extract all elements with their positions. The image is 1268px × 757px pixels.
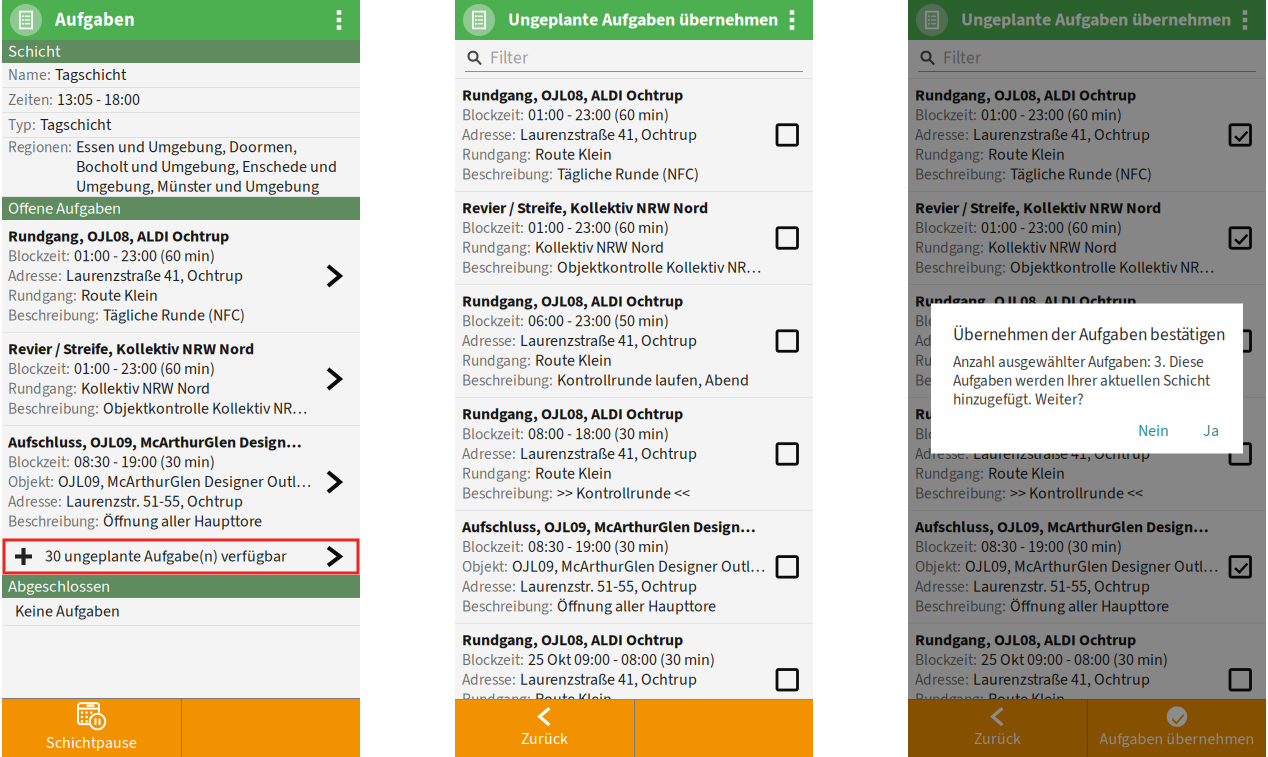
button[interactable]: Ja bbox=[1185, 413, 1243, 449]
staticText: Blockzeit: bbox=[915, 423, 977, 445]
staticText: Blockzeit: bbox=[8, 245, 70, 267]
staticText: Laurenzstr. 51-55, Ochtrup bbox=[66, 490, 243, 513]
staticText: 08:30 - 19:00 (30 min) bbox=[528, 536, 669, 558]
staticText: 01:00 - 23:00 (60 min) bbox=[74, 245, 215, 268]
staticText: Rundgang: bbox=[8, 378, 77, 400]
staticText: Tägliche Runde (NFC) bbox=[557, 163, 699, 186]
staticText: Rundgang, OJL08, ALDI Ochtrup bbox=[915, 629, 1136, 652]
staticText: Schicht bbox=[8, 40, 61, 63]
staticText: Rundgang, OJL08, ALDI Ochtrup bbox=[462, 84, 683, 107]
staticText: Ungeplante Aufgaben übernehmen bbox=[508, 7, 778, 33]
staticText: Zeiten: bbox=[8, 89, 53, 111]
button[interactable]: Revier / Streife, Kollektiv NRW Nord bbox=[2, 333, 360, 425]
staticText: Kollektiv NRW Nord bbox=[535, 236, 664, 259]
staticText: Route Klein bbox=[535, 462, 612, 485]
button[interactable]: Schichtpause bbox=[2, 699, 181, 757]
staticText: Adresse: bbox=[462, 443, 516, 465]
button[interactable]: Rundgang, OJL08, ALDI Ochtrup bbox=[908, 79, 1266, 191]
staticText: 01:00 - 23:00 (60 min) bbox=[981, 104, 1122, 127]
button[interactable]: Nein bbox=[1122, 413, 1185, 449]
staticText: Beschreibung: bbox=[462, 370, 553, 392]
staticText: Rundgang: bbox=[462, 350, 531, 372]
staticText: Abgeschlossen bbox=[8, 575, 110, 598]
button[interactable]: 30 ungeplante Aufgabe(n) verfügbar bbox=[2, 538, 360, 575]
staticText: Beschreibung: bbox=[8, 511, 99, 533]
button[interactable]: Mehr Optionen bbox=[1239, 0, 1251, 40]
staticText: Adresse: bbox=[915, 124, 969, 146]
staticText: Adresse: bbox=[462, 669, 516, 691]
staticText: Objektkontrolle Kollektiv NR… bbox=[103, 397, 307, 420]
button[interactable]: Rundgang, OJL08, ALDI Ochtrup bbox=[455, 624, 813, 736]
staticText: Adresse: bbox=[8, 491, 62, 513]
staticText: Rundgang, OJL08, ALDI Ochtrup bbox=[915, 403, 1136, 426]
staticText: 08:30 - 19:00 (30 min) bbox=[74, 451, 215, 474]
staticText: Schichtpause bbox=[46, 732, 137, 754]
staticText: Objektkontrolle Kollektiv NR… bbox=[1010, 256, 1214, 279]
staticText: Laurenzstraße 41, Ochtrup bbox=[973, 330, 1150, 352]
button[interactable]: Rundgang, OJL08, ALDI Ochtrup bbox=[2, 220, 360, 332]
staticText: Route Klein bbox=[988, 688, 1065, 711]
staticText: Blockzeit: bbox=[462, 104, 524, 126]
staticText: Laurenzstraße 41, Ochtrup bbox=[66, 265, 243, 287]
staticText: Rundgang: bbox=[915, 689, 984, 711]
staticText: Tägliche Runde (NFC) bbox=[103, 304, 245, 327]
staticText: Regionen: bbox=[8, 136, 72, 158]
button[interactable]: Rundgang, OJL08, ALDI Ochtrup bbox=[455, 79, 813, 191]
staticText: Blockzeit: bbox=[462, 217, 524, 239]
staticText: Route Klein bbox=[988, 349, 1065, 372]
staticText: Revier / Streife, Kollektiv NRW Nord bbox=[462, 197, 708, 220]
staticText: Adresse: bbox=[915, 669, 969, 691]
button[interactable]: Rundgang, OJL08, ALDI Ochtrup bbox=[908, 285, 1266, 397]
staticText: Blockzeit: bbox=[462, 310, 524, 332]
staticText: Laurenzstr. 51-55, Ochtrup bbox=[973, 575, 1150, 598]
staticText: Beschreibung: bbox=[8, 398, 99, 420]
staticText: Objekt: bbox=[462, 556, 508, 578]
button[interactable]: Rundgang, OJL08, ALDI Ochtrup bbox=[908, 398, 1266, 510]
staticText: Öffnung aller Haupttore bbox=[103, 510, 262, 533]
staticText: Rundgang: bbox=[915, 237, 984, 259]
button[interactable]: Mehr Optionen bbox=[333, 0, 345, 40]
button[interactable]: Aufschluss, OJL09, McArthurGlen Design… bbox=[2, 426, 360, 538]
button[interactable]: Zurück bbox=[908, 699, 1087, 757]
staticText: 01:00 - 23:00 (60 min) bbox=[981, 217, 1122, 239]
staticText: 08:30 - 19:00 (30 min) bbox=[981, 536, 1122, 558]
staticText: 25 Okt 09:00 - 08:00 (30 min) bbox=[528, 649, 715, 671]
staticText: Laurenzstraße 41, Ochtrup bbox=[520, 330, 697, 352]
staticText: OJL09, McArthurGlen Designer Outl… bbox=[512, 555, 765, 578]
button[interactable]: Rundgang, OJL08, ALDI Ochtrup bbox=[455, 398, 813, 510]
staticText: 06:00 - 23:00 (50 min) bbox=[528, 310, 669, 333]
button[interactable]: Rundgang, OJL08, ALDI Ochtrup bbox=[455, 285, 813, 397]
staticText: Rundgang: bbox=[8, 285, 77, 307]
staticText: Rundgang: bbox=[915, 463, 984, 485]
staticText: Blockzeit: bbox=[462, 536, 524, 558]
staticText: Blockzeit: bbox=[8, 358, 70, 380]
staticText: Blockzeit: bbox=[915, 217, 977, 239]
button[interactable]: Aufgaben übernehmen bbox=[1088, 699, 1266, 757]
staticText: Rundgang: bbox=[462, 689, 531, 711]
staticText: Beschreibung: bbox=[462, 257, 553, 279]
staticText: Rundgang: bbox=[462, 463, 531, 485]
button[interactable]: Zurück bbox=[455, 699, 634, 757]
staticText: Adresse: bbox=[462, 576, 516, 598]
staticText: Blockzeit: bbox=[915, 536, 977, 558]
button[interactable]: Revier / Streife, Kollektiv NRW Nord bbox=[908, 192, 1266, 284]
button[interactable]: Mehr Optionen bbox=[786, 0, 798, 40]
button[interactable]: Rundgang, OJL08, ALDI Ochtrup bbox=[908, 624, 1266, 736]
button[interactable]: Revier / Streife, Kollektiv NRW Nord bbox=[455, 192, 813, 284]
staticText: Beschreibung: bbox=[915, 709, 1006, 730]
staticText: Öffnung aller Haupttore bbox=[1010, 595, 1169, 618]
staticText: Ungeplante Aufgaben übernehmen bbox=[961, 7, 1231, 33]
button[interactable]: Aufschluss, OJL09, McArthurGlen Design… bbox=[908, 511, 1266, 623]
staticText: 25 Okt 09:00 - 08:00 (30 min) bbox=[981, 649, 1168, 671]
staticText: Bocholt und Umgebung, Enschede und bbox=[76, 156, 337, 178]
staticText: Revier / Streife, Kollektiv NRW Nord bbox=[915, 197, 1161, 220]
staticText: OJL09, McArthurGlen Designer Outl… bbox=[58, 471, 311, 493]
staticText: Rundgang, OJL08, ALDI Ochtrup bbox=[462, 403, 683, 426]
button[interactable]: Aufschluss, OJL09, McArthurGlen Design… bbox=[455, 511, 813, 623]
staticText: Aufgaben werden Ihrer aktuellen Schicht bbox=[953, 370, 1210, 392]
staticText: Adresse: bbox=[462, 124, 516, 146]
staticText: Rundgang: bbox=[915, 350, 984, 372]
staticText: Laurenzstraße 41, Ochtrup bbox=[973, 668, 1150, 691]
